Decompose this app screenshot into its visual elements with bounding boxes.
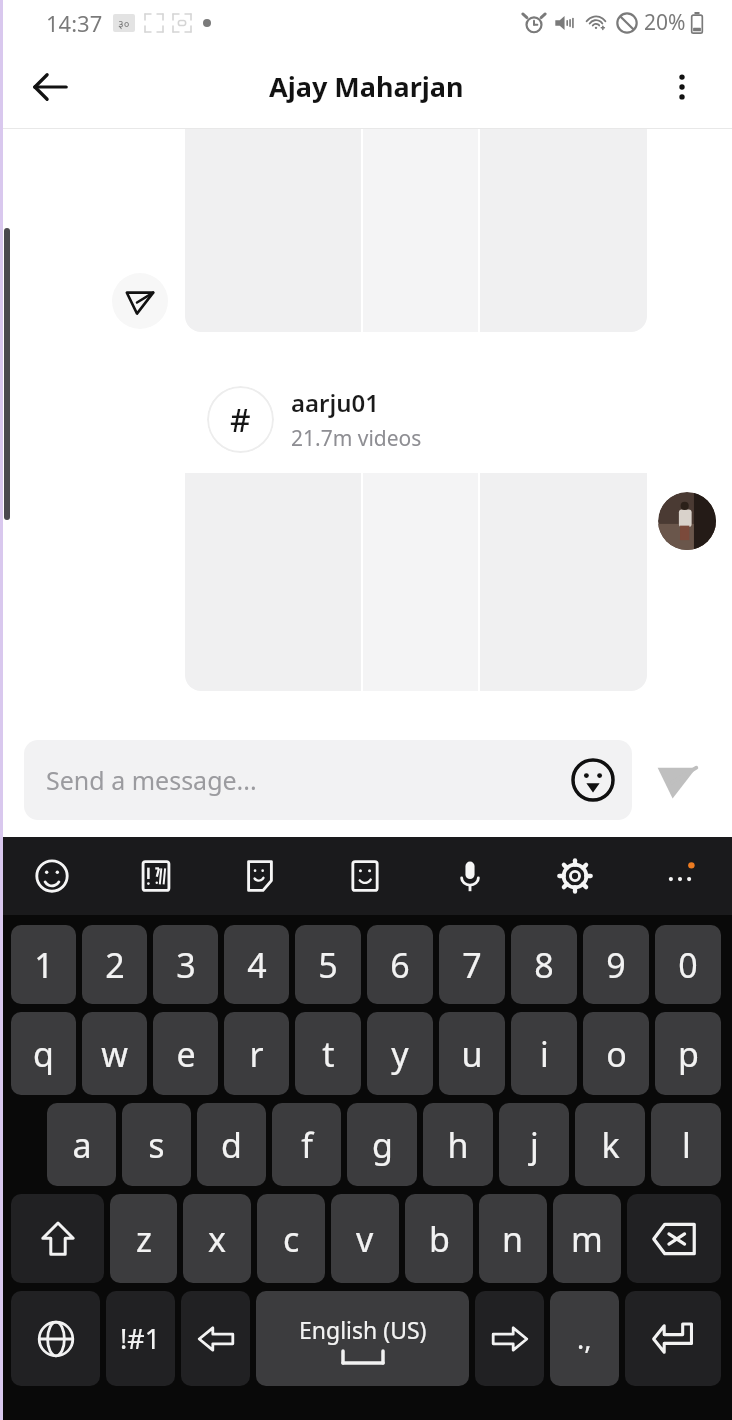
button[interactable]: Change language: [11, 1291, 100, 1386]
staticText: i: [540, 1031, 549, 1077]
button[interactable]: p: [655, 1012, 721, 1095]
staticText: r: [249, 1031, 264, 1077]
button[interactable]: b: [405, 1194, 473, 1283]
button[interactable]: 5: [295, 925, 361, 1004]
staticText: m: [571, 1216, 603, 1262]
button[interactable]: .,: [550, 1291, 619, 1386]
button[interactable]: Move cursor left: [181, 1291, 250, 1386]
button[interactable]: a: [47, 1103, 116, 1186]
staticText: x: [208, 1216, 226, 1262]
staticText: z: [136, 1216, 152, 1262]
button[interactable]: o: [583, 1012, 649, 1095]
staticText: e: [176, 1031, 196, 1077]
staticText: g: [372, 1122, 393, 1168]
button[interactable]: u: [439, 1012, 505, 1095]
staticText: p: [678, 1031, 699, 1077]
staticText: 3: [176, 942, 196, 988]
button[interactable]: 9: [583, 925, 649, 1004]
staticText: t: [322, 1031, 335, 1077]
staticText: 21.7m videos: [291, 424, 422, 453]
staticText: u: [461, 1031, 483, 1077]
button[interactable]: More options: [654, 59, 710, 115]
button[interactable]: y: [367, 1012, 433, 1095]
button[interactable]: j: [499, 1103, 569, 1186]
button[interactable]: d: [197, 1103, 266, 1186]
staticText: English (US): [299, 1314, 427, 1345]
button[interactable]: 3: [153, 925, 218, 1004]
button[interactable]: Emoji: [0, 837, 104, 915]
button[interactable]: Emoji: [570, 757, 616, 803]
staticText: 5: [318, 942, 338, 988]
staticText: ३०: [118, 16, 130, 31]
button[interactable]: Send: [646, 749, 708, 811]
button[interactable]: 2: [82, 925, 147, 1004]
staticText: 0: [678, 942, 698, 988]
button[interactable]: Stickers: [208, 837, 312, 915]
staticText: h: [447, 1122, 469, 1168]
staticText: y: [391, 1031, 409, 1077]
staticText: v: [356, 1216, 374, 1262]
button[interactable]: Profile picture: [658, 492, 716, 550]
button[interactable]: Share: [112, 273, 168, 329]
button[interactable]: f: [272, 1103, 341, 1186]
staticText: 2: [105, 942, 125, 988]
button[interactable]: m: [553, 1194, 621, 1283]
staticText: Send a message...: [46, 763, 570, 797]
staticText: 14:37: [46, 8, 103, 38]
staticText: 6: [390, 942, 410, 988]
button[interactable]: l: [651, 1103, 721, 1186]
staticText: n: [502, 1216, 524, 1262]
staticText: j: [530, 1122, 539, 1168]
button[interactable]: s: [122, 1103, 191, 1186]
button[interactable]: More: [627, 837, 732, 915]
button[interactable]: Settings: [522, 837, 627, 915]
button[interactable]: e: [153, 1012, 218, 1095]
staticText: .,: [577, 1320, 592, 1357]
button[interactable]: r: [224, 1012, 289, 1095]
button[interactable]: h: [423, 1103, 493, 1186]
button[interactable]: 6: [367, 925, 433, 1004]
staticText: 4: [247, 942, 267, 988]
button[interactable]: Send a message...: [24, 740, 632, 820]
button[interactable]: 8: [511, 925, 577, 1004]
staticText: 20%: [644, 8, 686, 37]
button[interactable]: z: [110, 1194, 177, 1283]
button[interactable]: v: [331, 1194, 399, 1283]
staticText: c: [283, 1216, 300, 1262]
button[interactable]: 1: [11, 925, 76, 1004]
button[interactable]: Move cursor right: [475, 1291, 544, 1386]
button[interactable]: i: [511, 1012, 577, 1095]
button[interactable]: n: [479, 1194, 547, 1283]
staticText: b: [429, 1216, 450, 1262]
button[interactable]: !#1: [106, 1291, 175, 1386]
button[interactable]: t: [295, 1012, 361, 1095]
button[interactable]: k: [575, 1103, 645, 1186]
staticText: aarju01: [291, 386, 380, 419]
button[interactable]: Voice input: [417, 837, 522, 915]
button[interactable]: Enter: [625, 1291, 721, 1386]
staticText: #: [230, 398, 251, 442]
button[interactable]: g: [347, 1103, 417, 1186]
staticText: 8: [534, 942, 554, 988]
button[interactable]: x: [183, 1194, 251, 1283]
button[interactable]: Backspace: [627, 1194, 721, 1283]
button[interactable]: 7: [439, 925, 505, 1004]
button[interactable]: Symbols: [104, 837, 208, 915]
button[interactable]: 4: [224, 925, 289, 1004]
staticText: l: [682, 1122, 691, 1168]
button[interactable]: #: [185, 366, 647, 691]
button[interactable]: Shift: [11, 1194, 104, 1283]
button[interactable]: 0: [655, 925, 721, 1004]
staticText: a: [72, 1122, 92, 1168]
staticText: Ajay Maharjan: [269, 68, 464, 105]
button[interactable]: q: [11, 1012, 76, 1095]
staticText: d: [221, 1122, 242, 1168]
staticText: q: [33, 1031, 54, 1077]
button[interactable]: c: [257, 1194, 325, 1283]
button[interactable]: Back: [20, 57, 80, 117]
staticText: s: [148, 1122, 165, 1168]
button[interactable]: English (US): [256, 1291, 469, 1386]
button[interactable]: w: [82, 1012, 147, 1095]
button[interactable]: Emoticons: [312, 837, 417, 915]
